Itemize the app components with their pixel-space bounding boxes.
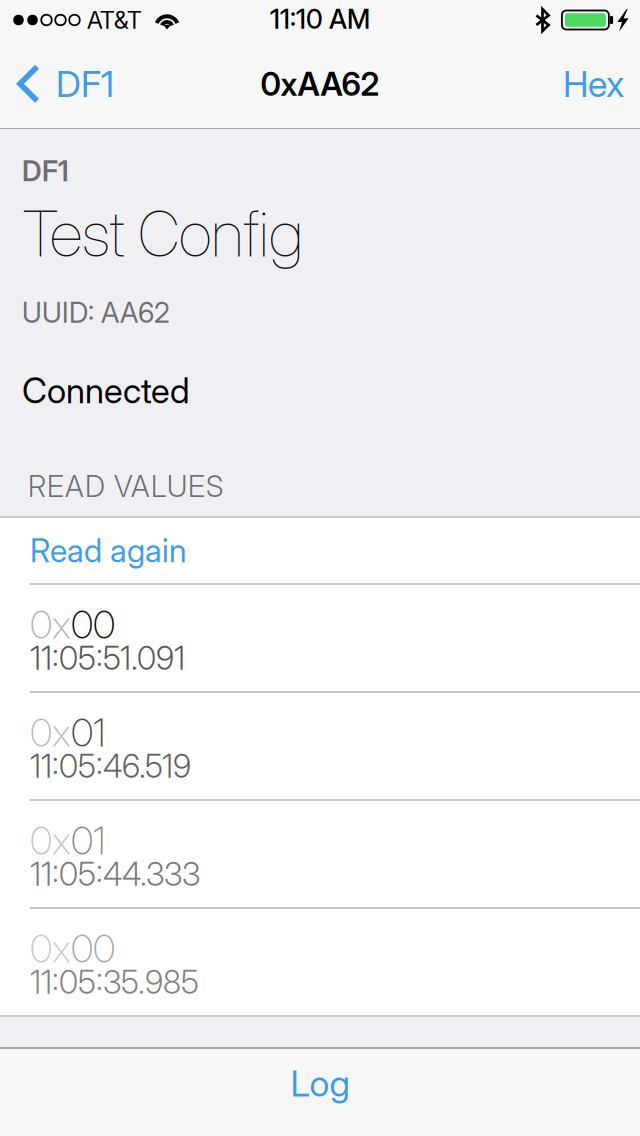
staticText: UUID: AA62	[22, 296, 170, 330]
staticText: 0x	[30, 925, 71, 972]
button[interactable]: Read again	[0, 518, 640, 583]
staticText: READ VALUES	[28, 468, 223, 504]
button[interactable]: DF1	[0, 40, 130, 128]
staticText: AT&T	[87, 5, 142, 34]
button[interactable]: 0x	[0, 693, 640, 799]
staticText: DF1	[56, 62, 114, 106]
staticText: 11:05:44.333	[30, 855, 200, 893]
staticText: 11:10 AM	[270, 3, 370, 35]
button[interactable]: 0x	[0, 801, 640, 907]
staticText: 0xAA62	[260, 65, 379, 103]
button[interactable]: Hex	[541, 40, 640, 128]
staticText: 01	[71, 709, 106, 756]
staticText: 0x	[30, 817, 71, 864]
staticText: Test Config	[22, 196, 303, 272]
staticText: Read again	[30, 531, 187, 570]
button[interactable]: Log	[0, 1049, 640, 1136]
staticText: Log	[290, 1062, 349, 1105]
button[interactable]: 0x	[0, 585, 640, 691]
staticText: 01	[71, 817, 106, 864]
staticText: Hex	[563, 62, 624, 106]
staticText: 11:05:35.985	[30, 963, 199, 1001]
staticText: 0x	[30, 601, 71, 648]
staticText: 00	[71, 601, 115, 648]
staticText: Connected	[22, 370, 190, 411]
staticText: 11:05:46.519	[30, 747, 191, 785]
staticText: 00	[71, 925, 115, 972]
staticText: 11:05:51.091	[30, 639, 185, 677]
staticText: 0x	[30, 709, 71, 756]
button[interactable]: 0x	[0, 909, 640, 1015]
staticText: DF1	[22, 154, 69, 188]
